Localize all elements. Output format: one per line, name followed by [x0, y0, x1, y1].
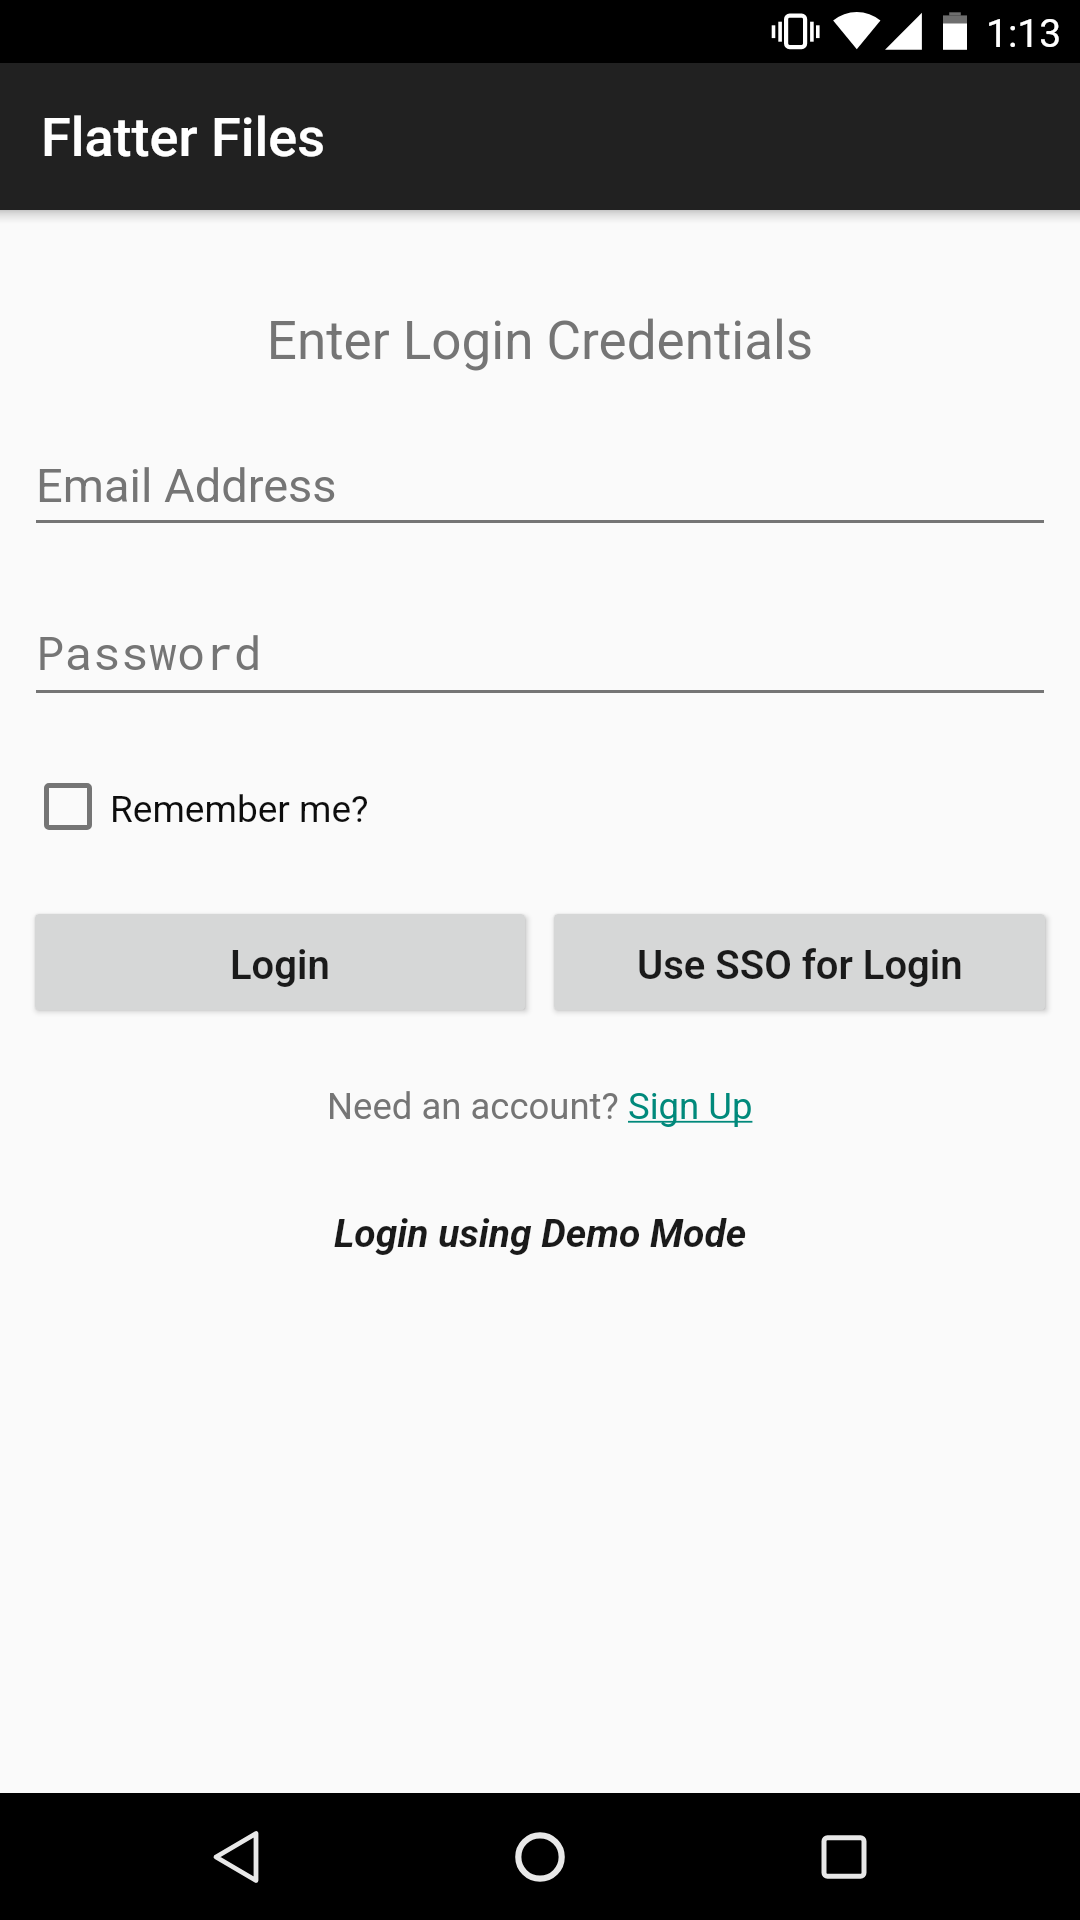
button[interactable]: Remember me checkbox [44, 783, 369, 830]
button[interactable]: Login [35, 914, 525, 1010]
staticText: Use SSO for Login [637, 942, 963, 989]
button[interactable]: Login using Demo Mode [0, 1211, 1080, 1257]
staticText: Enter Login Credentials [0, 310, 1080, 372]
button[interactable]: Recent apps [784, 1793, 904, 1920]
staticText: Password [36, 621, 262, 683]
staticText: Need an account? [327, 1085, 628, 1128]
staticText: 1:13 [986, 11, 1062, 57]
button[interactable]: Need an account? [0, 1085, 1080, 1128]
button[interactable]: Back [176, 1793, 296, 1920]
staticText: Sign Up [628, 1085, 753, 1128]
button[interactable]: Use SSO for Login [554, 914, 1045, 1010]
button[interactable]: Home [480, 1793, 600, 1920]
staticText: Flatter Files [41, 106, 326, 169]
staticText: Login [230, 942, 330, 989]
button[interactable]: Email Address [0, 434, 1080, 523]
staticText: Email Address [36, 458, 337, 513]
staticText: Remember me? [110, 788, 369, 831]
button[interactable]: Password [0, 604, 1080, 693]
